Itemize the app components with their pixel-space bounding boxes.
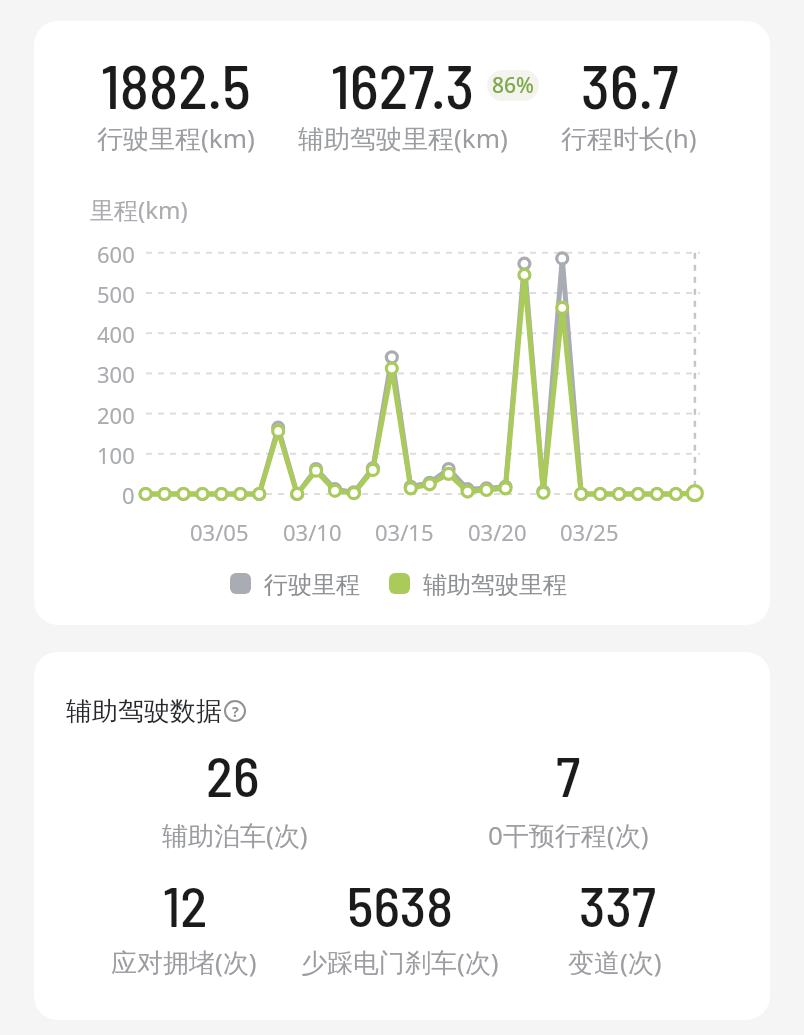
- staticText: 03/25: [560, 517, 619, 545]
- staticText: 03/10: [283, 517, 342, 545]
- staticText: 86%: [492, 71, 534, 100]
- button[interactable]: 辅助驾驶里程: [389, 570, 567, 596]
- staticText: ?: [232, 702, 239, 721]
- staticText: 辅助驾驶里程(km): [298, 120, 508, 154]
- staticText: 400: [97, 319, 135, 347]
- staticText: 里程(km): [90, 193, 188, 223]
- staticText: 行驶里程(km): [97, 120, 255, 154]
- staticText: 03/20: [468, 517, 527, 545]
- staticText: 辅助驾驶数据: [66, 695, 222, 728]
- button[interactable]: ?: [224, 700, 246, 722]
- staticText: 行驶里程: [264, 570, 360, 596]
- staticText: 1882.5: [101, 48, 251, 118]
- button[interactable]: 行驶里程: [230, 570, 360, 596]
- staticText: 0: [122, 480, 135, 508]
- button[interactable]: 86%: [487, 70, 539, 101]
- staticText: 500: [97, 279, 135, 307]
- staticText: 应对拥堵(次): [111, 944, 257, 978]
- staticText: 少踩电门刹车(次): [301, 944, 499, 978]
- staticText: 03/05: [190, 517, 249, 545]
- staticText: 36.7: [581, 48, 679, 118]
- staticText: 600: [97, 239, 135, 267]
- staticText: 5638: [347, 871, 453, 937]
- staticText: 变道(次): [568, 944, 662, 978]
- staticText: 03/15: [375, 517, 434, 545]
- staticText: 337: [579, 871, 656, 937]
- staticText: 0干预行程(次): [488, 817, 649, 851]
- staticText: 300: [97, 359, 135, 387]
- staticText: 200: [97, 400, 135, 428]
- staticText: 12: [163, 871, 208, 937]
- staticText: 辅助泊车(次): [162, 817, 308, 851]
- staticText: 7: [556, 741, 581, 807]
- staticText: 26: [206, 741, 260, 807]
- staticText: 100: [97, 440, 135, 468]
- staticText: 行程时长(h): [561, 120, 697, 154]
- staticText: 辅助驾驶里程: [423, 570, 567, 596]
- staticText: 1627.3: [331, 48, 475, 118]
